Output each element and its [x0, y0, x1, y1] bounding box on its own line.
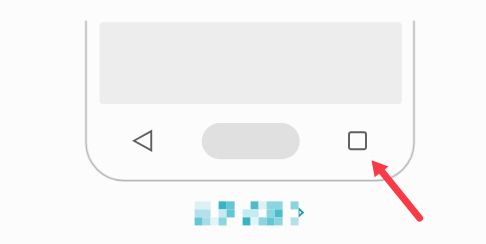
button[interactable]: Back [120, 119, 164, 163]
button[interactable]: Learn more [193, 200, 308, 227]
button[interactable]: Home [201, 122, 301, 161]
button[interactable]: Recent apps [336, 119, 380, 163]
